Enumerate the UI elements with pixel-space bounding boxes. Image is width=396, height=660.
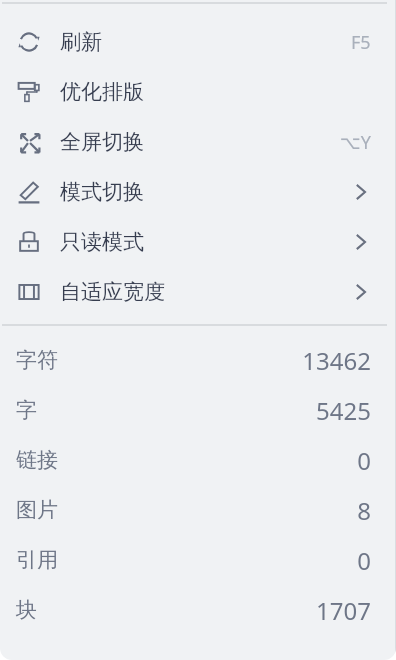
staticText: 优化排版	[60, 79, 144, 105]
staticText: 刷新	[60, 29, 102, 55]
button[interactable]: 图片	[0, 485, 396, 535]
staticText: 模式切换	[60, 179, 144, 205]
staticText: 引用	[16, 547, 58, 573]
staticText: 自适应宽度	[60, 279, 165, 305]
staticText: 13462	[302, 344, 371, 377]
button[interactable]: 优化排版	[0, 67, 396, 117]
staticText: 只读模式	[60, 229, 144, 255]
button[interactable]: 模式切换	[0, 167, 396, 217]
staticText: 8	[357, 494, 371, 527]
staticText: 全屏切换	[60, 129, 144, 155]
staticText: 字符	[16, 347, 58, 373]
staticText: 5425	[316, 394, 371, 427]
staticText: 图片	[16, 497, 58, 523]
button[interactable]: 块	[0, 585, 396, 635]
staticText: 字	[16, 397, 37, 423]
button[interactable]: 全屏切换	[0, 117, 396, 167]
button[interactable]: 引用	[0, 535, 396, 585]
button[interactable]: 只读模式	[0, 217, 396, 267]
button[interactable]: 链接	[0, 435, 396, 485]
staticText: 链接	[16, 447, 58, 473]
staticText: ⌥Y	[340, 130, 371, 155]
staticText: F5	[351, 30, 371, 55]
staticText: 0	[357, 544, 371, 577]
staticText: 块	[16, 597, 37, 623]
staticText: 0	[357, 444, 371, 477]
button[interactable]: 自适应宽度	[0, 267, 396, 317]
button[interactable]: 字符	[0, 335, 396, 385]
staticText: 1707	[316, 594, 371, 627]
button[interactable]: 字	[0, 385, 396, 435]
button[interactable]: 刷新	[0, 17, 396, 67]
